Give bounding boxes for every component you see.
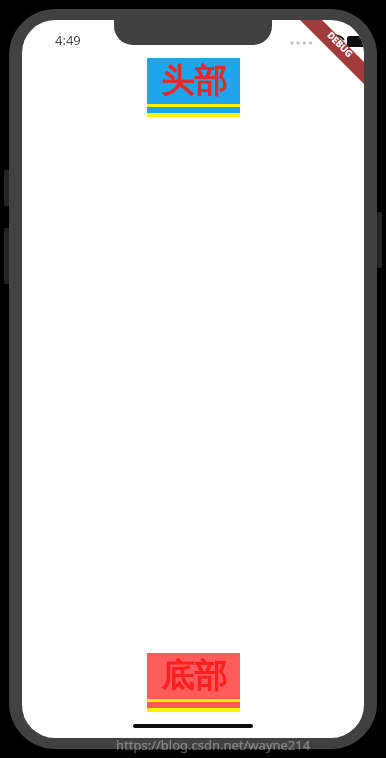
staticText: 4:49 [55, 31, 81, 49]
other: Debug banner [298, 20, 364, 86]
staticText: https://blog.csdn.net/wayne214 [116, 736, 311, 754]
button[interactable]: 底部 [147, 653, 240, 712]
staticText: 头部 [161, 60, 227, 102]
staticText: 底部 [161, 655, 227, 697]
button[interactable]: 头部 [147, 58, 240, 117]
staticText: DEBUG [325, 29, 356, 59]
